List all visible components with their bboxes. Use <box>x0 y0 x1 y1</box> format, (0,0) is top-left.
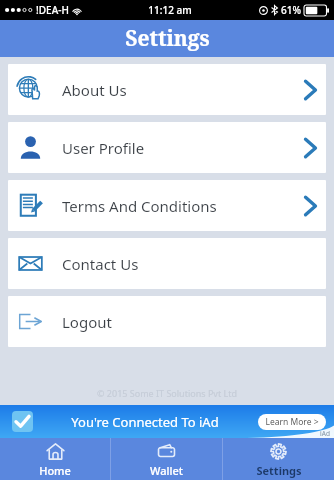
button[interactable]: You're Connected To iAd <box>0 405 334 438</box>
staticText: iAd <box>320 429 330 438</box>
button[interactable]: Learn More > <box>258 414 326 430</box>
button[interactable]: Logout <box>8 296 326 347</box>
button[interactable]: User Profile <box>8 122 326 173</box>
staticText: Wallet <box>150 463 183 478</box>
staticText: User Profile <box>62 138 145 158</box>
staticText: 61% <box>281 3 301 17</box>
button[interactable]: Home <box>0 438 110 480</box>
staticText: Learn More > <box>265 416 319 428</box>
staticText: Settings <box>125 24 210 53</box>
staticText: © 2015 Some IT Solutions Pvt Ltd <box>97 387 237 399</box>
staticText: You're Connected To iAd <box>71 413 219 431</box>
staticText: 11:12 am <box>148 3 192 17</box>
staticText: Home <box>39 463 71 478</box>
button[interactable]: Wallet <box>111 438 222 480</box>
staticText: Contact Us <box>62 254 139 274</box>
button[interactable]: About Us <box>8 64 326 115</box>
staticText: Logout <box>62 312 112 332</box>
staticText: !DEA-H <box>36 3 69 17</box>
button[interactable]: Contact Us <box>8 238 326 289</box>
button[interactable]: Terms And Conditions <box>8 180 326 231</box>
staticText: About Us <box>62 80 127 100</box>
button[interactable]: Settings <box>223 438 334 480</box>
staticText: Settings <box>256 463 302 478</box>
staticText: Terms And Conditions <box>62 196 217 216</box>
